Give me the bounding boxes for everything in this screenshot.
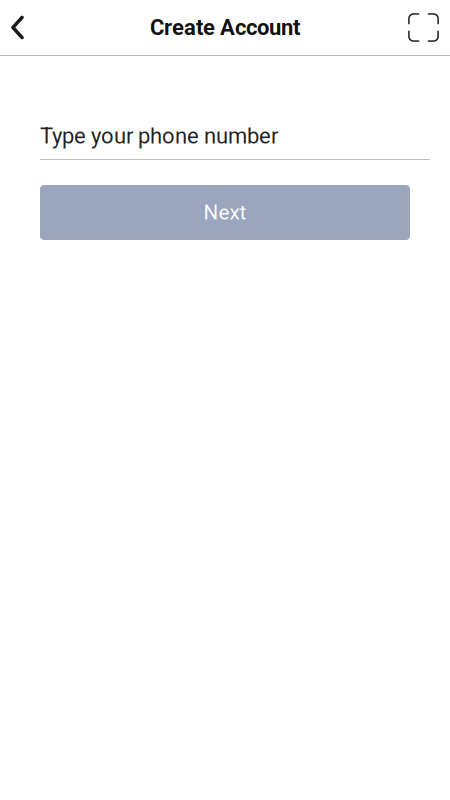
button[interactable]: Scan code xyxy=(402,0,445,55)
button[interactable]: Next xyxy=(40,185,410,240)
staticText: Next xyxy=(203,200,246,225)
staticText: Type your phone number xyxy=(40,123,278,149)
button[interactable]: Type your phone number xyxy=(40,123,430,160)
staticText: Create Account xyxy=(150,15,300,40)
button[interactable]: Back xyxy=(0,0,35,55)
